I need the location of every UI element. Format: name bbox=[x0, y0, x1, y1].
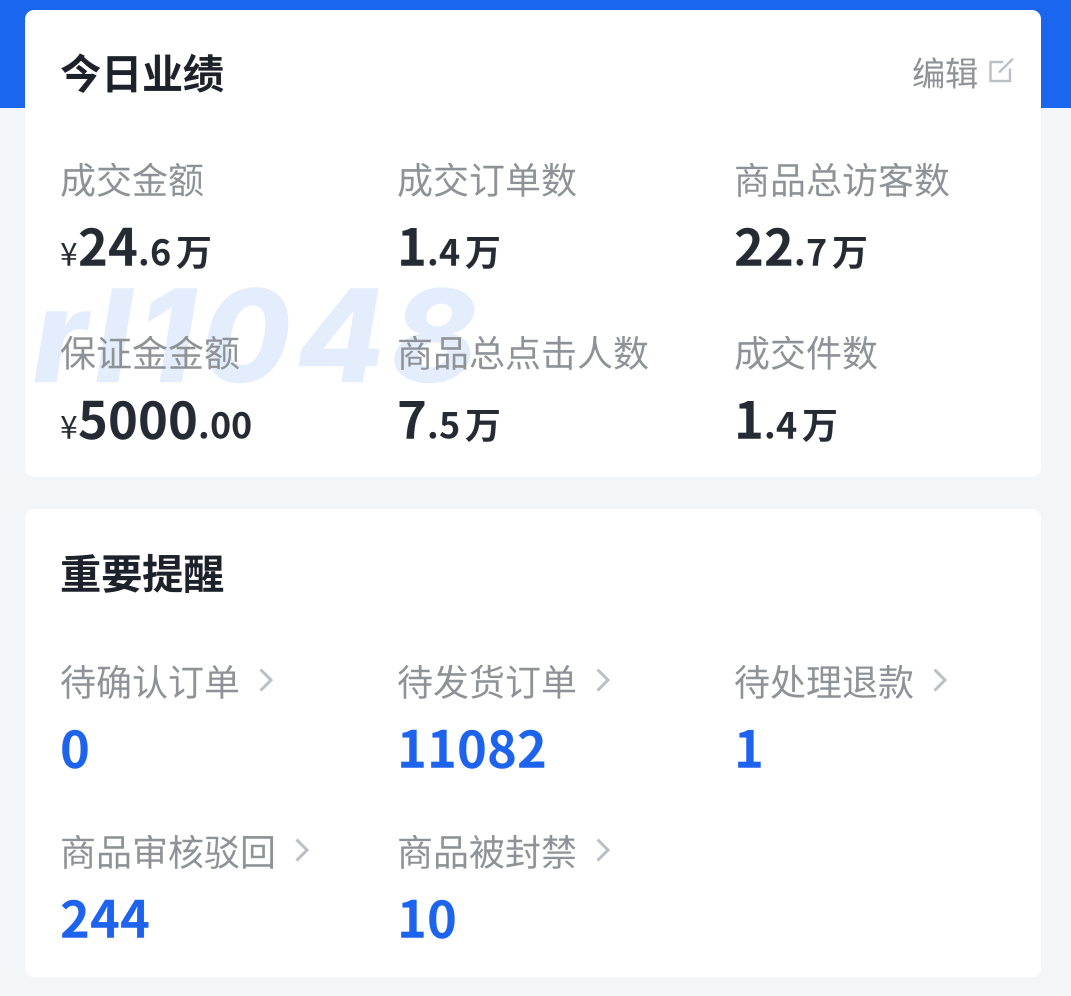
button[interactable]: 编辑 bbox=[899, 48, 1027, 94]
button[interactable]: 待确认订单 bbox=[60, 654, 397, 736]
staticText: 今日业绩 bbox=[60, 41, 224, 101]
button[interactable]: 商品审核驳回 bbox=[60, 824, 397, 906]
staticText: 22 bbox=[734, 207, 794, 280]
button[interactable]: 待处理退款 bbox=[734, 654, 1071, 736]
staticText: 万 bbox=[176, 224, 212, 276]
staticText: 保证金金额 bbox=[60, 325, 240, 377]
staticText: 成交件数 bbox=[734, 325, 878, 377]
staticText: 1 bbox=[734, 709, 764, 782]
staticText: 商品总点击人数 bbox=[397, 325, 649, 377]
staticText: 重要提醒 bbox=[60, 541, 224, 601]
staticText: 244 bbox=[60, 879, 150, 952]
staticText: rl1048 bbox=[33, 257, 477, 413]
staticText: 24 bbox=[78, 207, 138, 280]
staticText: 成交金额 bbox=[60, 152, 204, 204]
staticText: .5 bbox=[427, 397, 460, 449]
staticText: 万 bbox=[832, 224, 868, 276]
staticText: 0 bbox=[60, 709, 90, 782]
staticText: .00 bbox=[198, 397, 252, 449]
staticText: 5000 bbox=[78, 380, 198, 453]
button[interactable]: 商品被封禁 bbox=[397, 824, 734, 906]
staticText: 11082 bbox=[397, 709, 547, 782]
staticText: 1 bbox=[397, 207, 427, 280]
staticText: .4 bbox=[427, 224, 460, 276]
staticText: 成交订单数 bbox=[397, 152, 577, 204]
staticText: 7 bbox=[397, 380, 427, 453]
staticText: 待确认订单 bbox=[60, 654, 240, 706]
staticText: 编辑 bbox=[912, 47, 978, 95]
staticText: .6 bbox=[138, 224, 171, 276]
staticText: 商品总访客数 bbox=[734, 152, 950, 204]
staticText: 万 bbox=[802, 397, 838, 449]
button[interactable]: 待发货订单 bbox=[397, 654, 734, 736]
staticText: 10 bbox=[397, 879, 457, 952]
staticText: .4 bbox=[764, 397, 797, 449]
staticText: 商品审核驳回 bbox=[60, 824, 276, 876]
staticText: 商品被封禁 bbox=[397, 824, 577, 876]
staticText: 万 bbox=[465, 397, 501, 449]
staticText: 待发货订单 bbox=[397, 654, 577, 706]
staticText: 待处理退款 bbox=[734, 654, 914, 706]
staticText: 1 bbox=[734, 380, 764, 453]
staticText: 万 bbox=[465, 224, 501, 276]
staticText: ¥ bbox=[60, 402, 78, 448]
staticText: .7 bbox=[794, 224, 827, 276]
staticText: ¥ bbox=[60, 229, 78, 275]
